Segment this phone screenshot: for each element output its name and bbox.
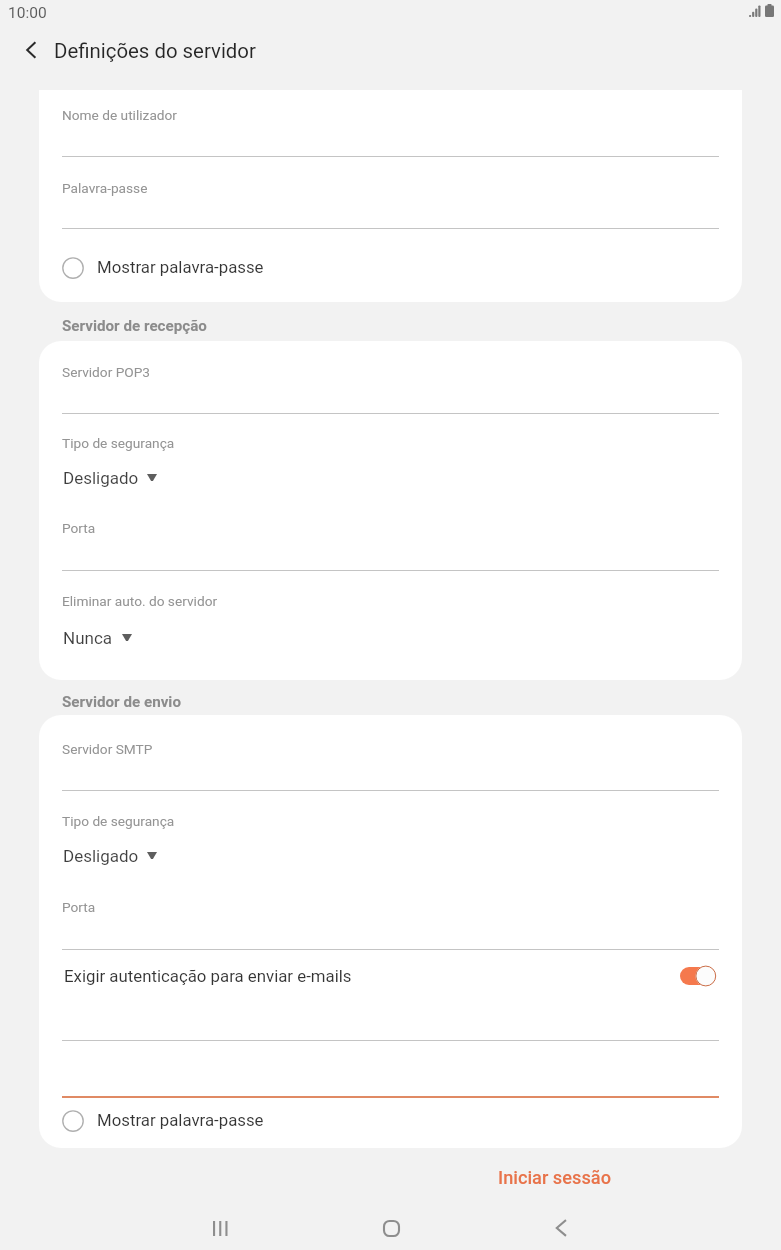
button[interactable] (39, 242, 742, 294)
button[interactable]: Recent apps (160, 1206, 280, 1250)
staticText: Tipo de segurança (62, 813, 175, 829)
button[interactable] (39, 1095, 742, 1147)
button[interactable] (39, 92, 742, 157)
staticText: Nunca (63, 628, 113, 648)
button[interactable] (39, 420, 742, 486)
staticText: Servidor POP3 (62, 364, 151, 380)
staticText: Nome de utilizador (62, 107, 178, 123)
staticText: 10:00 (8, 4, 47, 22)
button[interactable]: Back (502, 1206, 622, 1250)
staticText: Iniciar sessão (498, 1167, 612, 1188)
staticText: Definições do servidor (54, 39, 256, 63)
button[interactable] (39, 578, 742, 646)
staticText: Palavra-passe (62, 180, 148, 196)
button[interactable]: Home (331, 1206, 451, 1250)
staticText: Servidor de envio (62, 693, 181, 711)
staticText: Tipo de segurança (62, 435, 175, 451)
staticText: Servidor SMTP (62, 741, 153, 757)
button[interactable]: Navigate up (6, 27, 54, 75)
staticText: Desligado (63, 468, 139, 488)
button[interactable] (39, 951, 742, 1003)
button[interactable] (39, 726, 742, 791)
button[interactable] (39, 505, 742, 571)
staticText: Porta (62, 899, 96, 915)
button[interactable] (39, 165, 742, 229)
button[interactable] (39, 884, 742, 950)
staticText: Porta (62, 520, 96, 536)
button[interactable] (39, 349, 742, 414)
button[interactable] (39, 1003, 742, 1041)
button[interactable]: Iniciar sessão (478, 1155, 631, 1195)
staticText: Eliminar auto. do servidor (62, 593, 218, 609)
button[interactable] (39, 798, 742, 864)
staticText: Mostrar palavra-passe (97, 1110, 264, 1130)
staticText: Servidor de recepção (62, 317, 207, 335)
staticText: Exigir autenticação para enviar e-mails (64, 966, 352, 986)
staticText: Desligado (63, 846, 139, 866)
staticText: Mostrar palavra-passe (97, 257, 264, 277)
button[interactable] (39, 1041, 742, 1097)
